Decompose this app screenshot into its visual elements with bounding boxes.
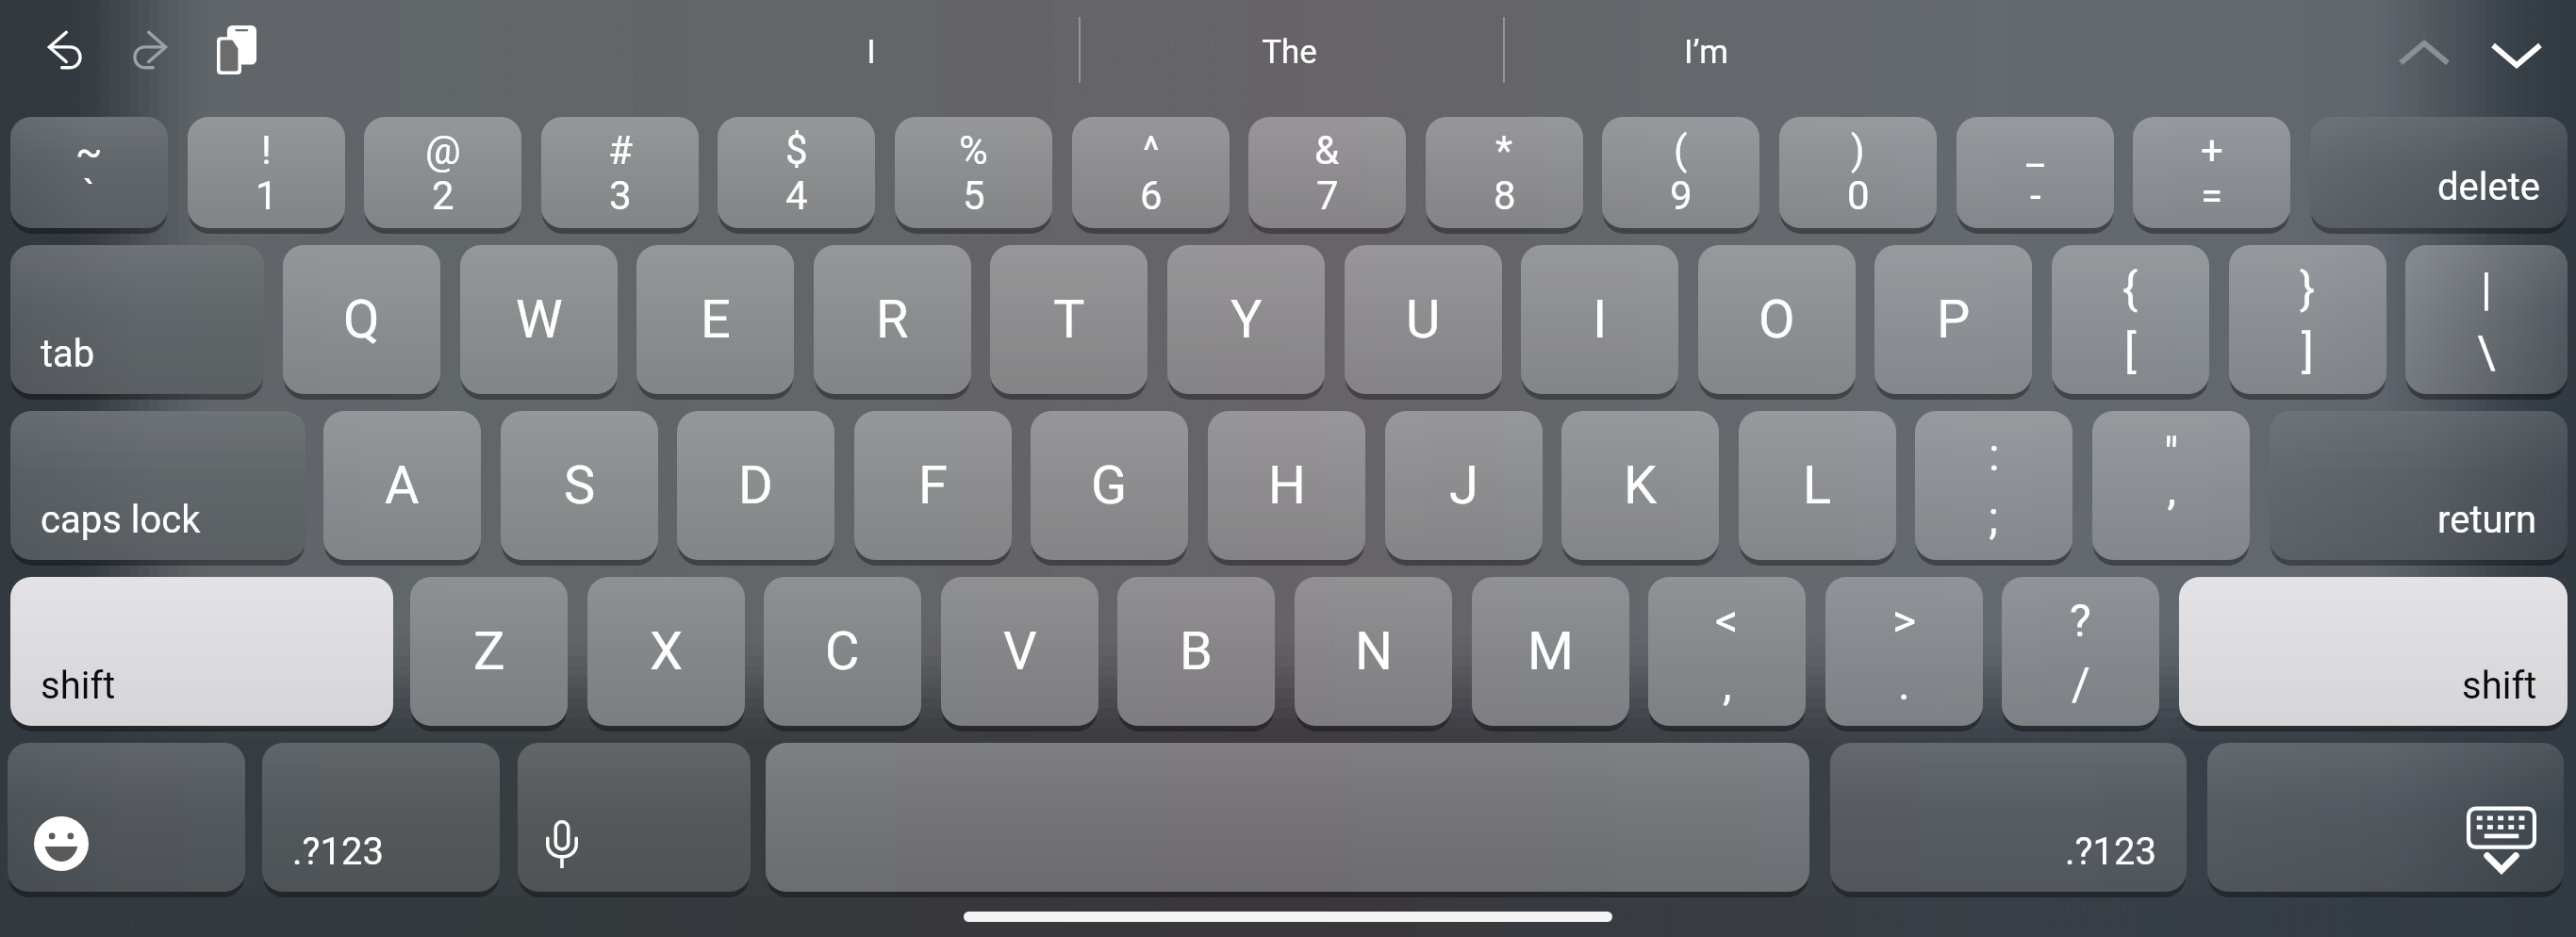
staticText: I [1593, 288, 1608, 351]
button[interactable]: & [1248, 117, 1406, 228]
staticText: - [2030, 173, 2041, 219]
button[interactable]: Z [410, 577, 568, 726]
button[interactable]: shift [10, 577, 393, 726]
staticText: A [385, 454, 420, 517]
button[interactable]: < [1648, 577, 1806, 726]
button[interactable]: _ [1957, 117, 2114, 228]
button[interactable]: Previous [2387, 19, 2461, 92]
button[interactable]: ) [1779, 117, 1937, 228]
button[interactable]: " [2092, 411, 2250, 560]
staticText: delete [2437, 165, 2541, 209]
button[interactable]: .?123 [1830, 743, 2187, 892]
button[interactable]: ~ [10, 117, 168, 228]
button[interactable] [2207, 743, 2564, 892]
staticText: ` [83, 172, 95, 218]
button[interactable]: V [941, 577, 1098, 726]
staticText: _ [2026, 127, 2044, 173]
staticText: * [1495, 127, 1513, 173]
staticText: ) [1851, 127, 1865, 173]
staticText: L [1803, 454, 1832, 517]
button[interactable]: The [1077, 0, 1501, 104]
button[interactable]: D [677, 411, 834, 560]
button[interactable] [8, 743, 245, 892]
button[interactable]: .?123 [262, 743, 500, 892]
staticText: I’m [1684, 33, 1728, 72]
button[interactable]: W [460, 245, 618, 394]
button[interactable]: % [895, 117, 1052, 228]
staticText: 4 [785, 173, 808, 219]
button[interactable]: F [854, 411, 1012, 560]
button[interactable]: I [660, 0, 1082, 104]
button[interactable] [518, 743, 751, 892]
button[interactable]: I’m [1494, 0, 1918, 104]
button[interactable]: M [1472, 577, 1629, 726]
button[interactable]: { [2052, 245, 2209, 394]
button[interactable]: T [990, 245, 1148, 394]
button[interactable]: Redo [131, 30, 168, 67]
button[interactable]: @ [364, 117, 521, 228]
staticText: 2 [432, 173, 454, 219]
button[interactable]: G [1031, 411, 1188, 560]
button[interactable]: E [636, 245, 794, 394]
button[interactable]: ( [1602, 117, 1759, 228]
button[interactable]: C [764, 577, 921, 726]
button[interactable]: B [1117, 577, 1275, 726]
staticText: . [1898, 657, 1910, 710]
staticText: tab [41, 332, 95, 376]
button[interactable]: X [587, 577, 745, 726]
button[interactable]: + [2133, 117, 2290, 228]
button[interactable]: | [2405, 245, 2568, 394]
staticText: 8 [1494, 173, 1516, 219]
button[interactable]: ^ [1072, 117, 1230, 228]
staticText: P [1937, 288, 1971, 351]
button[interactable]: A [323, 411, 481, 560]
button[interactable]: U [1345, 245, 1502, 394]
button[interactable]: S [501, 411, 658, 560]
staticText: R [876, 288, 909, 351]
staticText: E [701, 288, 731, 351]
button[interactable]: } [2229, 245, 2386, 394]
staticText: .?123 [2065, 830, 2156, 874]
button[interactable]: Undo [47, 30, 84, 67]
staticText: return [2437, 498, 2537, 542]
button[interactable]: * [1426, 117, 1583, 228]
staticText: : [1989, 428, 2000, 481]
button[interactable]: tab [10, 245, 264, 394]
button[interactable]: delete [2310, 117, 2568, 228]
staticText: J [1449, 454, 1478, 517]
staticText: 7 [1316, 173, 1339, 219]
button[interactable]: P [1874, 245, 2032, 394]
button[interactable]: O [1698, 245, 1856, 394]
button[interactable]: # [541, 117, 699, 228]
button[interactable]: L [1739, 411, 1896, 560]
button[interactable]: > [1825, 577, 1983, 726]
staticText: " [2164, 428, 2179, 481]
button[interactable] [766, 743, 1809, 892]
button[interactable]: ! [188, 117, 345, 228]
button[interactable]: H [1208, 411, 1365, 560]
staticText: B [1180, 620, 1213, 682]
staticText: 0 [1847, 173, 1870, 219]
staticText: | [2481, 262, 2492, 315]
staticText: M [1527, 620, 1574, 682]
button[interactable]: shift [2179, 577, 2568, 726]
button[interactable]: $ [718, 117, 875, 228]
staticText: [ [2124, 325, 2137, 378]
staticText: F [918, 454, 948, 517]
staticText: O [1759, 288, 1795, 351]
button[interactable]: caps lock [10, 411, 305, 560]
button[interactable]: N [1295, 577, 1452, 726]
button[interactable]: I [1521, 245, 1678, 394]
staticText: ’ [2167, 491, 2176, 544]
button[interactable]: return [2270, 411, 2568, 560]
button[interactable]: : [1915, 411, 2072, 560]
staticText: C [825, 620, 860, 682]
button[interactable]: Y [1167, 245, 1325, 394]
button[interactable]: Paste [217, 25, 256, 74]
button[interactable]: J [1385, 411, 1543, 560]
button[interactable]: R [814, 245, 971, 394]
button[interactable]: ? [2002, 577, 2159, 726]
button[interactable]: Next [2480, 19, 2553, 92]
button[interactable]: K [1561, 411, 1719, 560]
button[interactable]: Q [283, 245, 440, 394]
